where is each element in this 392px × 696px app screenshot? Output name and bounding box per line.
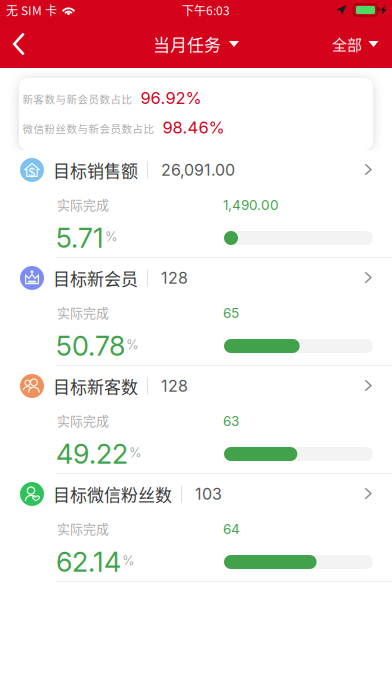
staticText: 实际完成: [57, 195, 109, 213]
button[interactable]: 返回: [0, 20, 46, 68]
staticText: 1,490.00: [223, 197, 279, 213]
button[interactable]: 当月任务: [153, 20, 239, 68]
staticText: 无 SIM 卡: [6, 1, 57, 19]
button[interactable]: 目标新会员: [0, 258, 392, 366]
staticText: 目标销售额: [53, 158, 138, 182]
staticText: 103: [195, 484, 222, 504]
staticText: 目标新会员: [53, 266, 138, 290]
staticText: 新客数与新会员数占比: [22, 91, 132, 107]
staticText: 5.71: [56, 222, 104, 254]
staticText: 96.92%: [140, 88, 201, 108]
staticText: %: [126, 337, 139, 352]
staticText: $: [28, 165, 36, 180]
staticText: %: [129, 445, 142, 460]
staticText: %: [122, 553, 135, 568]
staticText: 50.78: [56, 330, 125, 362]
staticText: 128: [161, 376, 188, 396]
button[interactable]: 全部: [332, 20, 392, 68]
button[interactable]: 目标新客数: [0, 366, 392, 474]
staticText: 128: [161, 268, 188, 288]
staticText: 49.22: [56, 438, 128, 470]
staticText: 64: [223, 521, 240, 537]
staticText: 全部: [332, 33, 362, 55]
staticText: 98.46%: [162, 117, 224, 137]
staticText: 63: [223, 413, 239, 429]
button[interactable]: $: [0, 150, 392, 258]
button[interactable]: 目标微信粉丝数: [0, 474, 392, 582]
staticText: 当月任务: [153, 32, 221, 56]
staticText: 62.14: [56, 546, 121, 578]
staticText: %: [105, 229, 118, 244]
staticText: 目标新客数: [53, 374, 138, 398]
staticText: 实际完成: [57, 303, 109, 321]
staticText: 65: [223, 305, 239, 321]
staticText: 实际完成: [57, 411, 109, 429]
staticText: 实际完成: [57, 519, 109, 537]
staticText: 微信粉丝数与新会员数占比: [22, 121, 154, 136]
staticText: 26,091.00: [161, 160, 235, 180]
staticText: 目标微信粉丝数: [53, 482, 172, 506]
staticText: 下午6:03: [182, 1, 230, 19]
